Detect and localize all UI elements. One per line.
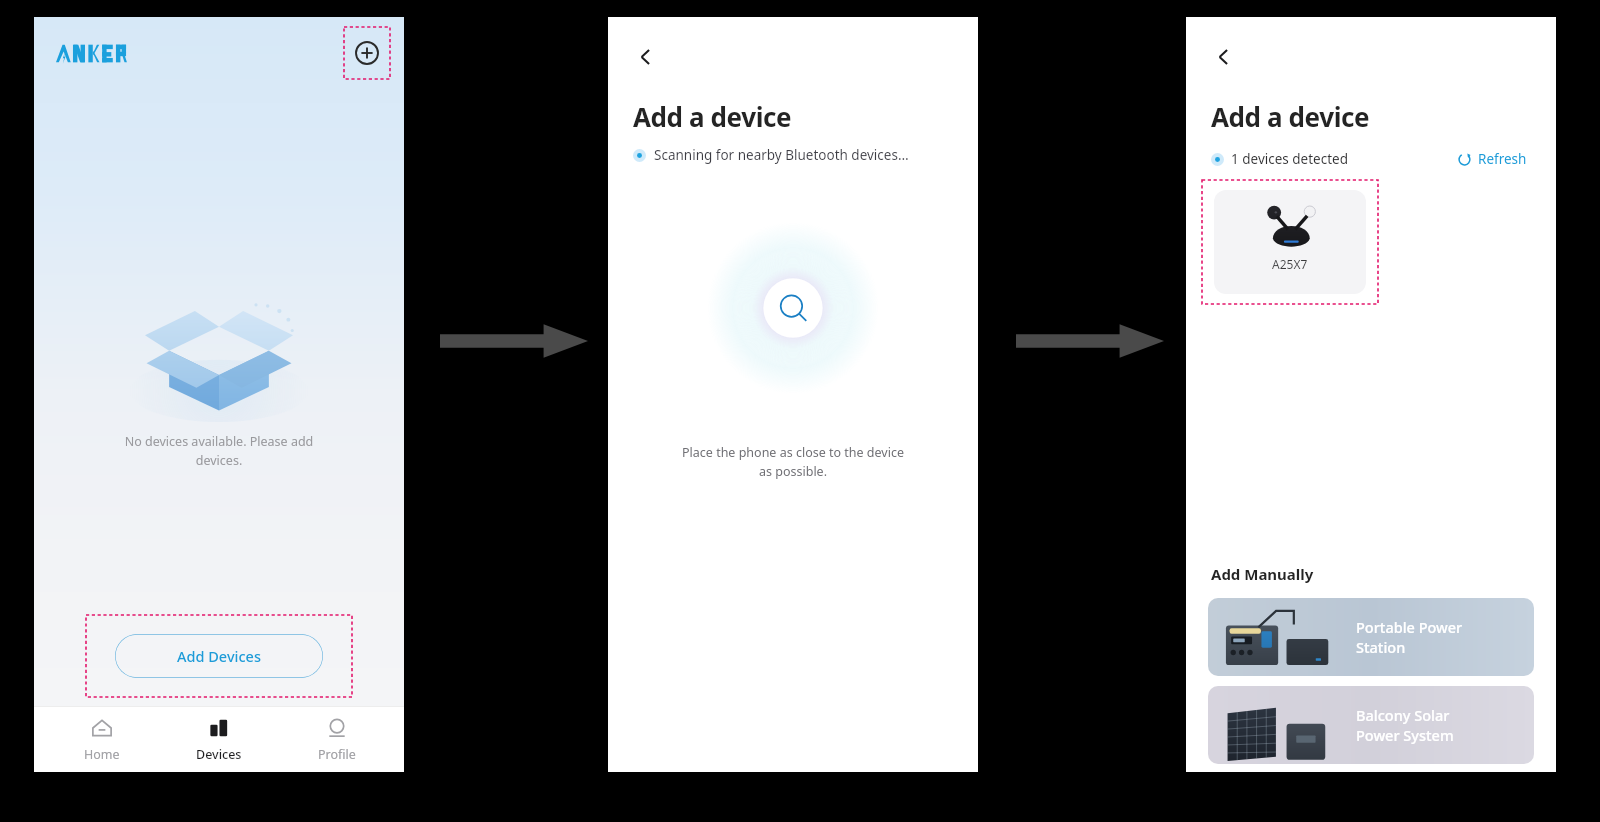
staticText: Balcony Solar Power System — [1356, 705, 1454, 745]
staticText: Add a device — [633, 99, 792, 134]
button[interactable]: Back — [1204, 37, 1244, 77]
staticText: Place the phone as close to the device a… — [608, 444, 978, 480]
staticText: Portable Power Station — [1356, 617, 1463, 657]
staticText: Home — [84, 746, 120, 763]
staticText: A25X7 — [1272, 256, 1308, 272]
button[interactable]: Devices — [169, 716, 269, 763]
button[interactable]: Add Devices — [115, 634, 323, 678]
button[interactable]: Add device — [344, 27, 390, 79]
staticText: Scanning for nearby Bluetooth devices… — [654, 146, 909, 164]
staticText: Profile — [318, 746, 356, 763]
staticText: Devices — [196, 746, 242, 763]
staticText: 1 devices detected — [1231, 150, 1348, 168]
staticText: Refresh — [1478, 150, 1527, 168]
button[interactable]: Balcony Solar Power System — [1208, 686, 1534, 764]
staticText: Add Devices — [177, 646, 261, 666]
button[interactable]: Home — [52, 716, 152, 763]
button[interactable]: Back — [626, 37, 666, 77]
button[interactable]: A25X7 — [1214, 190, 1366, 294]
staticText: Add a device — [1211, 99, 1370, 134]
staticText: No devices available. Please add devices… — [34, 433, 404, 469]
button[interactable]: Refresh — [1453, 146, 1531, 172]
staticText: Add Manually — [1211, 564, 1314, 584]
button[interactable]: Portable Power Station — [1208, 598, 1534, 676]
button[interactable]: Profile — [287, 716, 387, 763]
